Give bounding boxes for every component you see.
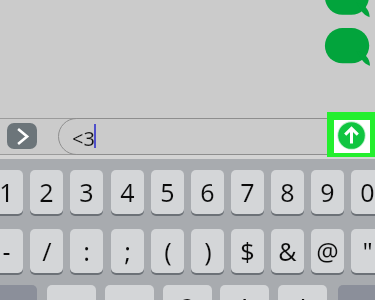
staticText: 6 bbox=[200, 175, 215, 209]
button[interactable]: 9 bbox=[311, 170, 344, 214]
button[interactable]: 6 bbox=[191, 170, 224, 214]
staticText: 5 bbox=[160, 175, 175, 209]
staticText: / bbox=[42, 234, 52, 268]
staticText: ( bbox=[164, 234, 172, 268]
button[interactable]: 3 bbox=[70, 170, 103, 214]
staticText: ? bbox=[182, 290, 193, 300]
button[interactable]: 8 bbox=[271, 170, 304, 214]
button[interactable]: " bbox=[351, 229, 375, 273]
staticText: 1 bbox=[0, 175, 14, 209]
staticText: & bbox=[278, 234, 297, 268]
staticText: " bbox=[362, 234, 373, 268]
staticText: 4 bbox=[120, 175, 135, 209]
button[interactable]: ; bbox=[111, 229, 144, 273]
staticText: ) bbox=[204, 234, 212, 268]
staticText: 3 bbox=[79, 175, 94, 209]
staticText: @ bbox=[316, 234, 339, 268]
staticText: <3 bbox=[72, 125, 95, 152]
button[interactable]: 5 bbox=[151, 170, 184, 214]
staticText: 2 bbox=[39, 175, 54, 209]
staticText: ' bbox=[300, 290, 306, 300]
button[interactable]: - bbox=[0, 229, 23, 273]
button[interactable]: <3 bbox=[58, 118, 358, 155]
button[interactable]: . bbox=[47, 285, 96, 300]
button[interactable]: 2 bbox=[30, 170, 63, 214]
button[interactable]: : bbox=[70, 229, 103, 273]
button[interactable]: / bbox=[30, 229, 63, 273]
button[interactable]: Send bbox=[327, 112, 375, 157]
button[interactable]: ) bbox=[191, 229, 224, 273]
staticText: 0 bbox=[360, 175, 375, 209]
staticText: ! bbox=[241, 290, 248, 300]
button[interactable]: 4 bbox=[111, 170, 144, 214]
button[interactable]: ? bbox=[163, 285, 212, 300]
button[interactable]: @ bbox=[311, 229, 344, 273]
button[interactable]: 0 bbox=[351, 170, 375, 214]
button[interactable]: ! bbox=[220, 285, 269, 300]
button[interactable]: ( bbox=[151, 229, 184, 273]
staticText: 9 bbox=[320, 175, 335, 209]
staticText: - bbox=[2, 234, 11, 268]
staticText: 8 bbox=[280, 175, 295, 209]
staticText: 7 bbox=[240, 175, 255, 209]
button[interactable]: & bbox=[271, 229, 304, 273]
button[interactable]: 1 bbox=[0, 170, 23, 214]
button[interactable]: $ bbox=[231, 229, 264, 273]
button[interactable]: 7 bbox=[231, 170, 264, 214]
button[interactable]: , bbox=[105, 285, 154, 300]
staticText: $ bbox=[240, 234, 255, 268]
button[interactable]: Expand options bbox=[7, 123, 37, 149]
button[interactable]: ' bbox=[278, 285, 327, 300]
staticText: ; bbox=[124, 234, 131, 268]
staticText: : bbox=[83, 234, 90, 268]
